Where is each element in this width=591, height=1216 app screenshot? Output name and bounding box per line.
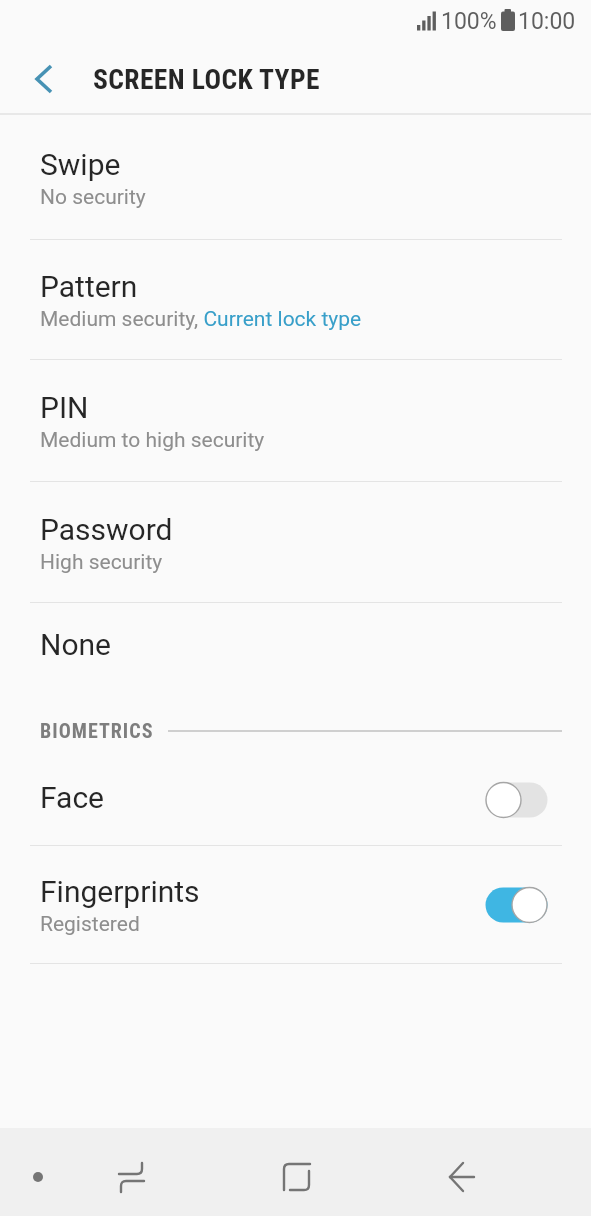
staticText: No security (40, 185, 146, 210)
staticText: BIOMETRICS (40, 719, 154, 742)
staticText: 10:00 (518, 8, 576, 35)
button[interactable]: Fingerprints (0, 846, 591, 963)
button[interactable] (256, 1137, 336, 1216)
button[interactable]: Pattern (0, 240, 591, 359)
staticText: Fingerprints (40, 874, 200, 909)
staticText: Face (40, 780, 105, 815)
button[interactable]: Face (0, 755, 591, 845)
button[interactable]: PIN (0, 360, 591, 481)
button[interactable]: Swipe (0, 115, 591, 239)
button[interactable] (422, 1137, 502, 1216)
staticText: Password (40, 512, 173, 547)
button[interactable] (22, 57, 66, 101)
staticText: Swipe (40, 147, 121, 182)
button[interactable]: None (0, 603, 591, 694)
button[interactable]: Password (0, 482, 591, 602)
staticText: Registered (40, 912, 140, 937)
staticText: Pattern (40, 269, 138, 304)
staticText: SCREEN LOCK TYPE (93, 63, 320, 95)
staticText: PIN (40, 390, 89, 425)
staticText: 100% (441, 8, 497, 35)
button[interactable] (91, 1137, 171, 1216)
staticText: Medium to high security (40, 428, 265, 453)
staticText: Medium security, Current lock type (40, 307, 362, 332)
staticText: None (40, 627, 111, 662)
staticText: High security (40, 550, 163, 575)
